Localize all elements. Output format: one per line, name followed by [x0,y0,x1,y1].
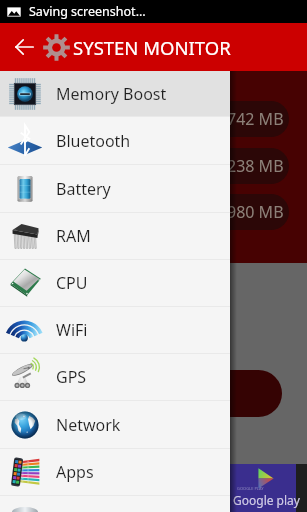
staticText: Bluetooth [56,130,131,152]
button[interactable]: GPS [0,354,230,400]
button[interactable]: WiFi [0,307,230,353]
staticText: Google play [233,492,300,508]
button[interactable]: Storage [0,496,230,512]
staticText: Network [56,414,121,436]
button[interactable]: RAM [0,213,230,259]
button[interactable]: Bluetooth [0,117,230,164]
staticText: 742 MB [227,108,284,130]
button[interactable]: Back [0,23,48,71]
staticText: SYSTEN MONITOR [73,35,231,60]
button[interactable]: GOOGLE PLAY [17,464,296,512]
button[interactable]: Battery [0,165,230,212]
staticText: RAM [56,225,91,247]
staticText: Memory Boost [56,83,167,105]
staticText: 980 MB [227,201,284,223]
button[interactable]: CPU [0,260,230,306]
staticText: GOOGLE PLAY [237,486,264,491]
button[interactable] [175,370,282,417]
staticText: GPS [56,366,87,388]
staticText: CPU [56,272,88,294]
staticText: Battery [56,178,111,200]
button[interactable]: Memory Boost [0,71,230,116]
button[interactable]: Apps [0,449,230,495]
staticText: WiFi [56,319,88,341]
button[interactable]: Network [0,401,230,448]
staticText: 238 MB [227,155,284,177]
staticText: Saving screenshot… [29,3,146,20]
staticText: Apps [56,461,94,483]
